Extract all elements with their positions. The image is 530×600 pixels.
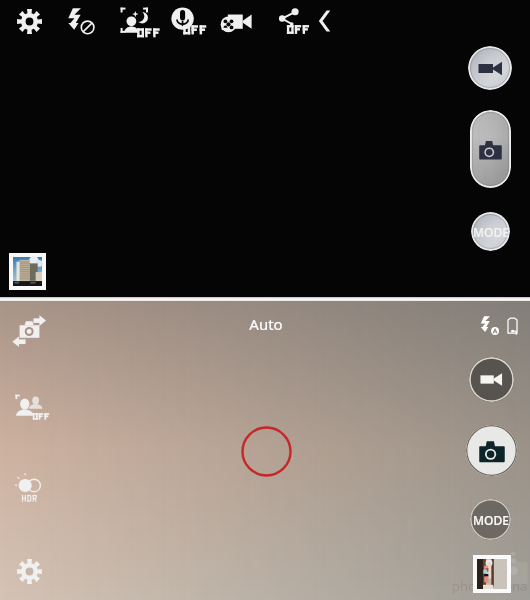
staticText: MODE (473, 224, 509, 240)
button[interactable]: Back (305, 3, 341, 39)
button[interactable]: Mode (470, 499, 511, 540)
button[interactable]: Take photo (470, 110, 511, 188)
staticText: MODE (473, 512, 509, 528)
button[interactable]: Share off (269, 0, 313, 44)
button[interactable]: HDR (7, 467, 51, 511)
button[interactable]: Record video (468, 46, 512, 90)
button[interactable]: Mode (471, 212, 510, 251)
button[interactable]: Record video (469, 357, 514, 402)
button[interactable]: Voice control off (165, 0, 209, 44)
button[interactable]: Gallery (13, 257, 42, 286)
button[interactable]: Gallery (477, 559, 507, 589)
button[interactable]: Switch camera (7, 309, 52, 354)
button[interactable]: Flash auto (478, 314, 502, 338)
staticText: Auto (1, 314, 530, 334)
button[interactable]: Video mode (216, 0, 260, 44)
button[interactable]: Flash off (61, 2, 101, 42)
button[interactable]: Settings (11, 3, 48, 40)
staticText: phoneArena (452, 577, 528, 595)
button[interactable]: Face detection off (7, 385, 50, 428)
button[interactable]: Settings (10, 552, 49, 591)
other: Battery (500, 313, 525, 338)
button[interactable]: Night mode off (112, 0, 158, 45)
button[interactable]: Take photo (466, 425, 517, 476)
